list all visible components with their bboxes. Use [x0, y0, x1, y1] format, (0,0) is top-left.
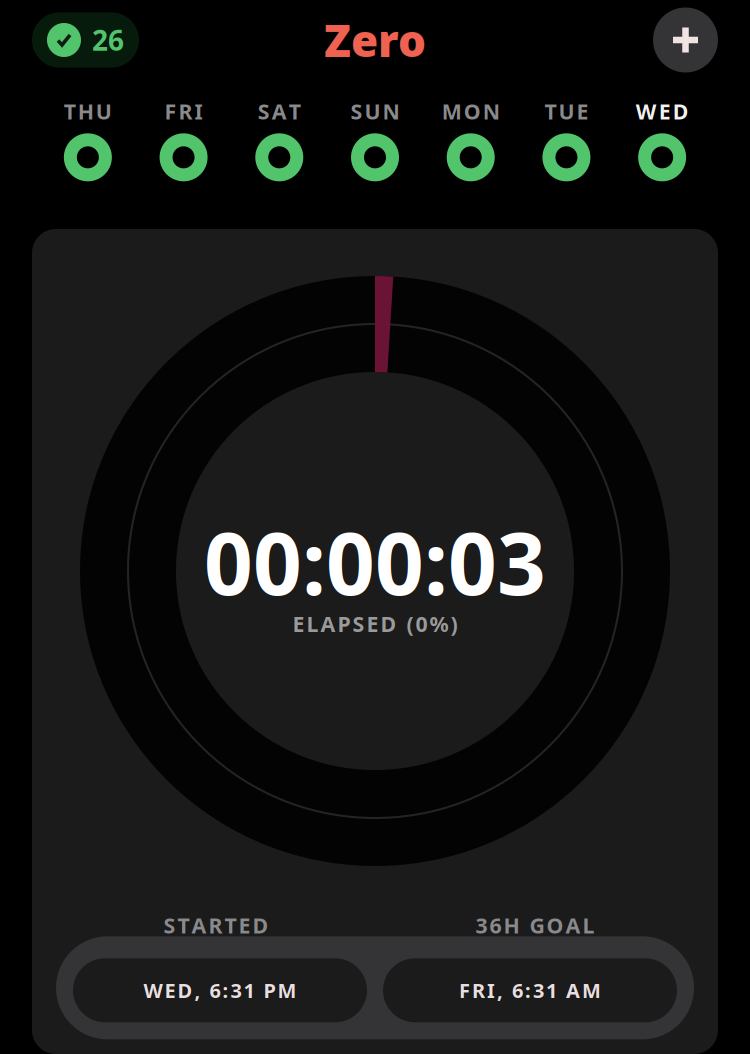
staticText: F R I — [165, 97, 203, 125]
staticText: Zero — [324, 11, 426, 69]
staticText: T H U — [64, 97, 112, 125]
button[interactable]: W E D , 6 : 3 1 P M — [73, 958, 367, 1022]
staticText: 26 — [92, 21, 124, 59]
staticText: T U E — [544, 97, 588, 125]
staticText: M O N — [442, 97, 500, 125]
staticText: W E D , 6 : 3 1 P M — [143, 977, 296, 1004]
staticText: E L A P S E D ( 0 % ) — [292, 609, 457, 638]
staticText: S U N — [350, 97, 399, 125]
staticText: 3 6 H G O A L — [475, 911, 594, 939]
staticText: F R I , 6 : 3 1 A M — [459, 977, 601, 1004]
staticText: S A T — [258, 97, 301, 125]
button[interactable]: F R I , 6 : 3 1 A M — [383, 958, 677, 1022]
button[interactable]: 26 — [32, 12, 139, 68]
staticText: S T A R T E D — [163, 911, 268, 939]
staticText: W E D — [636, 97, 689, 125]
button[interactable]: Add fast — [653, 7, 718, 72]
staticText: 00:00:03 — [204, 505, 546, 618]
